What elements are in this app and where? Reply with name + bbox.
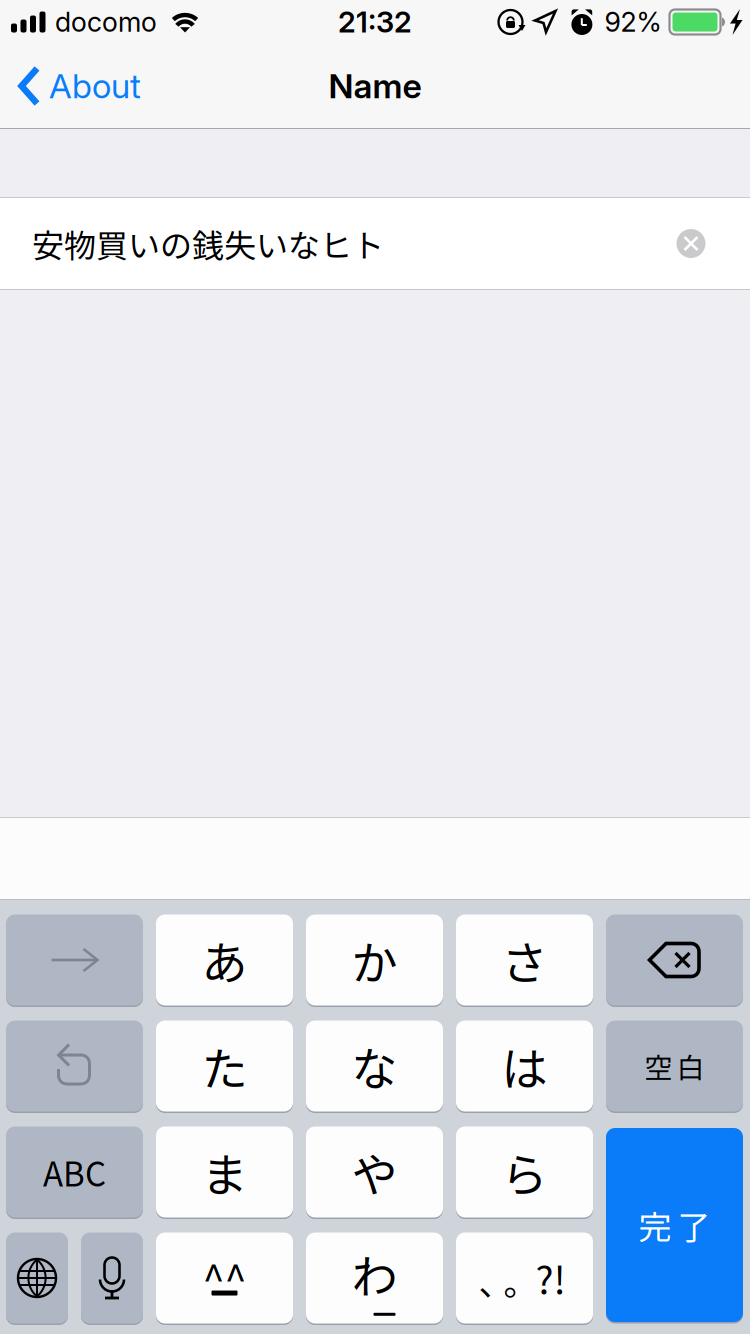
- staticText: 92%: [604, 6, 661, 38]
- staticText: さ: [501, 927, 547, 993]
- button[interactable]: [81, 1231, 143, 1325]
- staticText: 安物買いの銭失いなヒト: [32, 220, 384, 267]
- staticText: ^^: [202, 1248, 246, 1306]
- staticText: か: [351, 927, 397, 993]
- staticText: わ: [351, 1240, 397, 1307]
- button[interactable]: さ: [456, 913, 593, 1007]
- button[interactable]: 、: [456, 1231, 593, 1325]
- staticText: 。: [503, 1256, 537, 1305]
- staticText: あ: [201, 927, 247, 993]
- button[interactable]: [6, 1231, 68, 1325]
- staticText: About: [49, 65, 141, 106]
- button[interactable]: 空白: [606, 1019, 743, 1113]
- button[interactable]: [6, 913, 143, 1007]
- button[interactable]: [6, 1019, 143, 1113]
- staticText: な: [351, 1033, 397, 1099]
- staticText: docomo: [55, 6, 157, 38]
- staticText: ABC: [43, 1148, 106, 1196]
- button[interactable]: わ: [306, 1231, 443, 1325]
- button[interactable]: あ: [156, 913, 293, 1007]
- button[interactable]: 完了: [606, 1126, 743, 1323]
- staticText: ?!: [535, 1250, 565, 1305]
- button[interactable]: ま: [156, 1125, 293, 1219]
- button[interactable]: は: [456, 1019, 593, 1113]
- staticText: や: [351, 1139, 397, 1205]
- staticText: 21:32: [338, 4, 412, 40]
- staticText: Name: [328, 65, 421, 106]
- staticText: た: [201, 1033, 247, 1099]
- button[interactable]: ^^: [156, 1231, 293, 1325]
- button[interactable]: ら: [456, 1125, 593, 1219]
- staticText: ら: [501, 1139, 547, 1205]
- staticText: 完了: [638, 1201, 710, 1249]
- staticText: は: [501, 1033, 547, 1099]
- button[interactable]: た: [156, 1019, 293, 1113]
- button[interactable]: か: [306, 913, 443, 1007]
- staticText: 空白: [644, 1046, 704, 1086]
- button[interactable]: や: [306, 1125, 443, 1219]
- button[interactable]: な: [306, 1019, 443, 1113]
- button[interactable]: About: [0, 44, 153, 128]
- button[interactable]: [606, 913, 743, 1007]
- staticText: ま: [201, 1139, 247, 1205]
- button[interactable]: ABC: [6, 1125, 143, 1219]
- button[interactable]: Clear text: [663, 208, 719, 278]
- staticText: 、: [478, 1256, 512, 1305]
